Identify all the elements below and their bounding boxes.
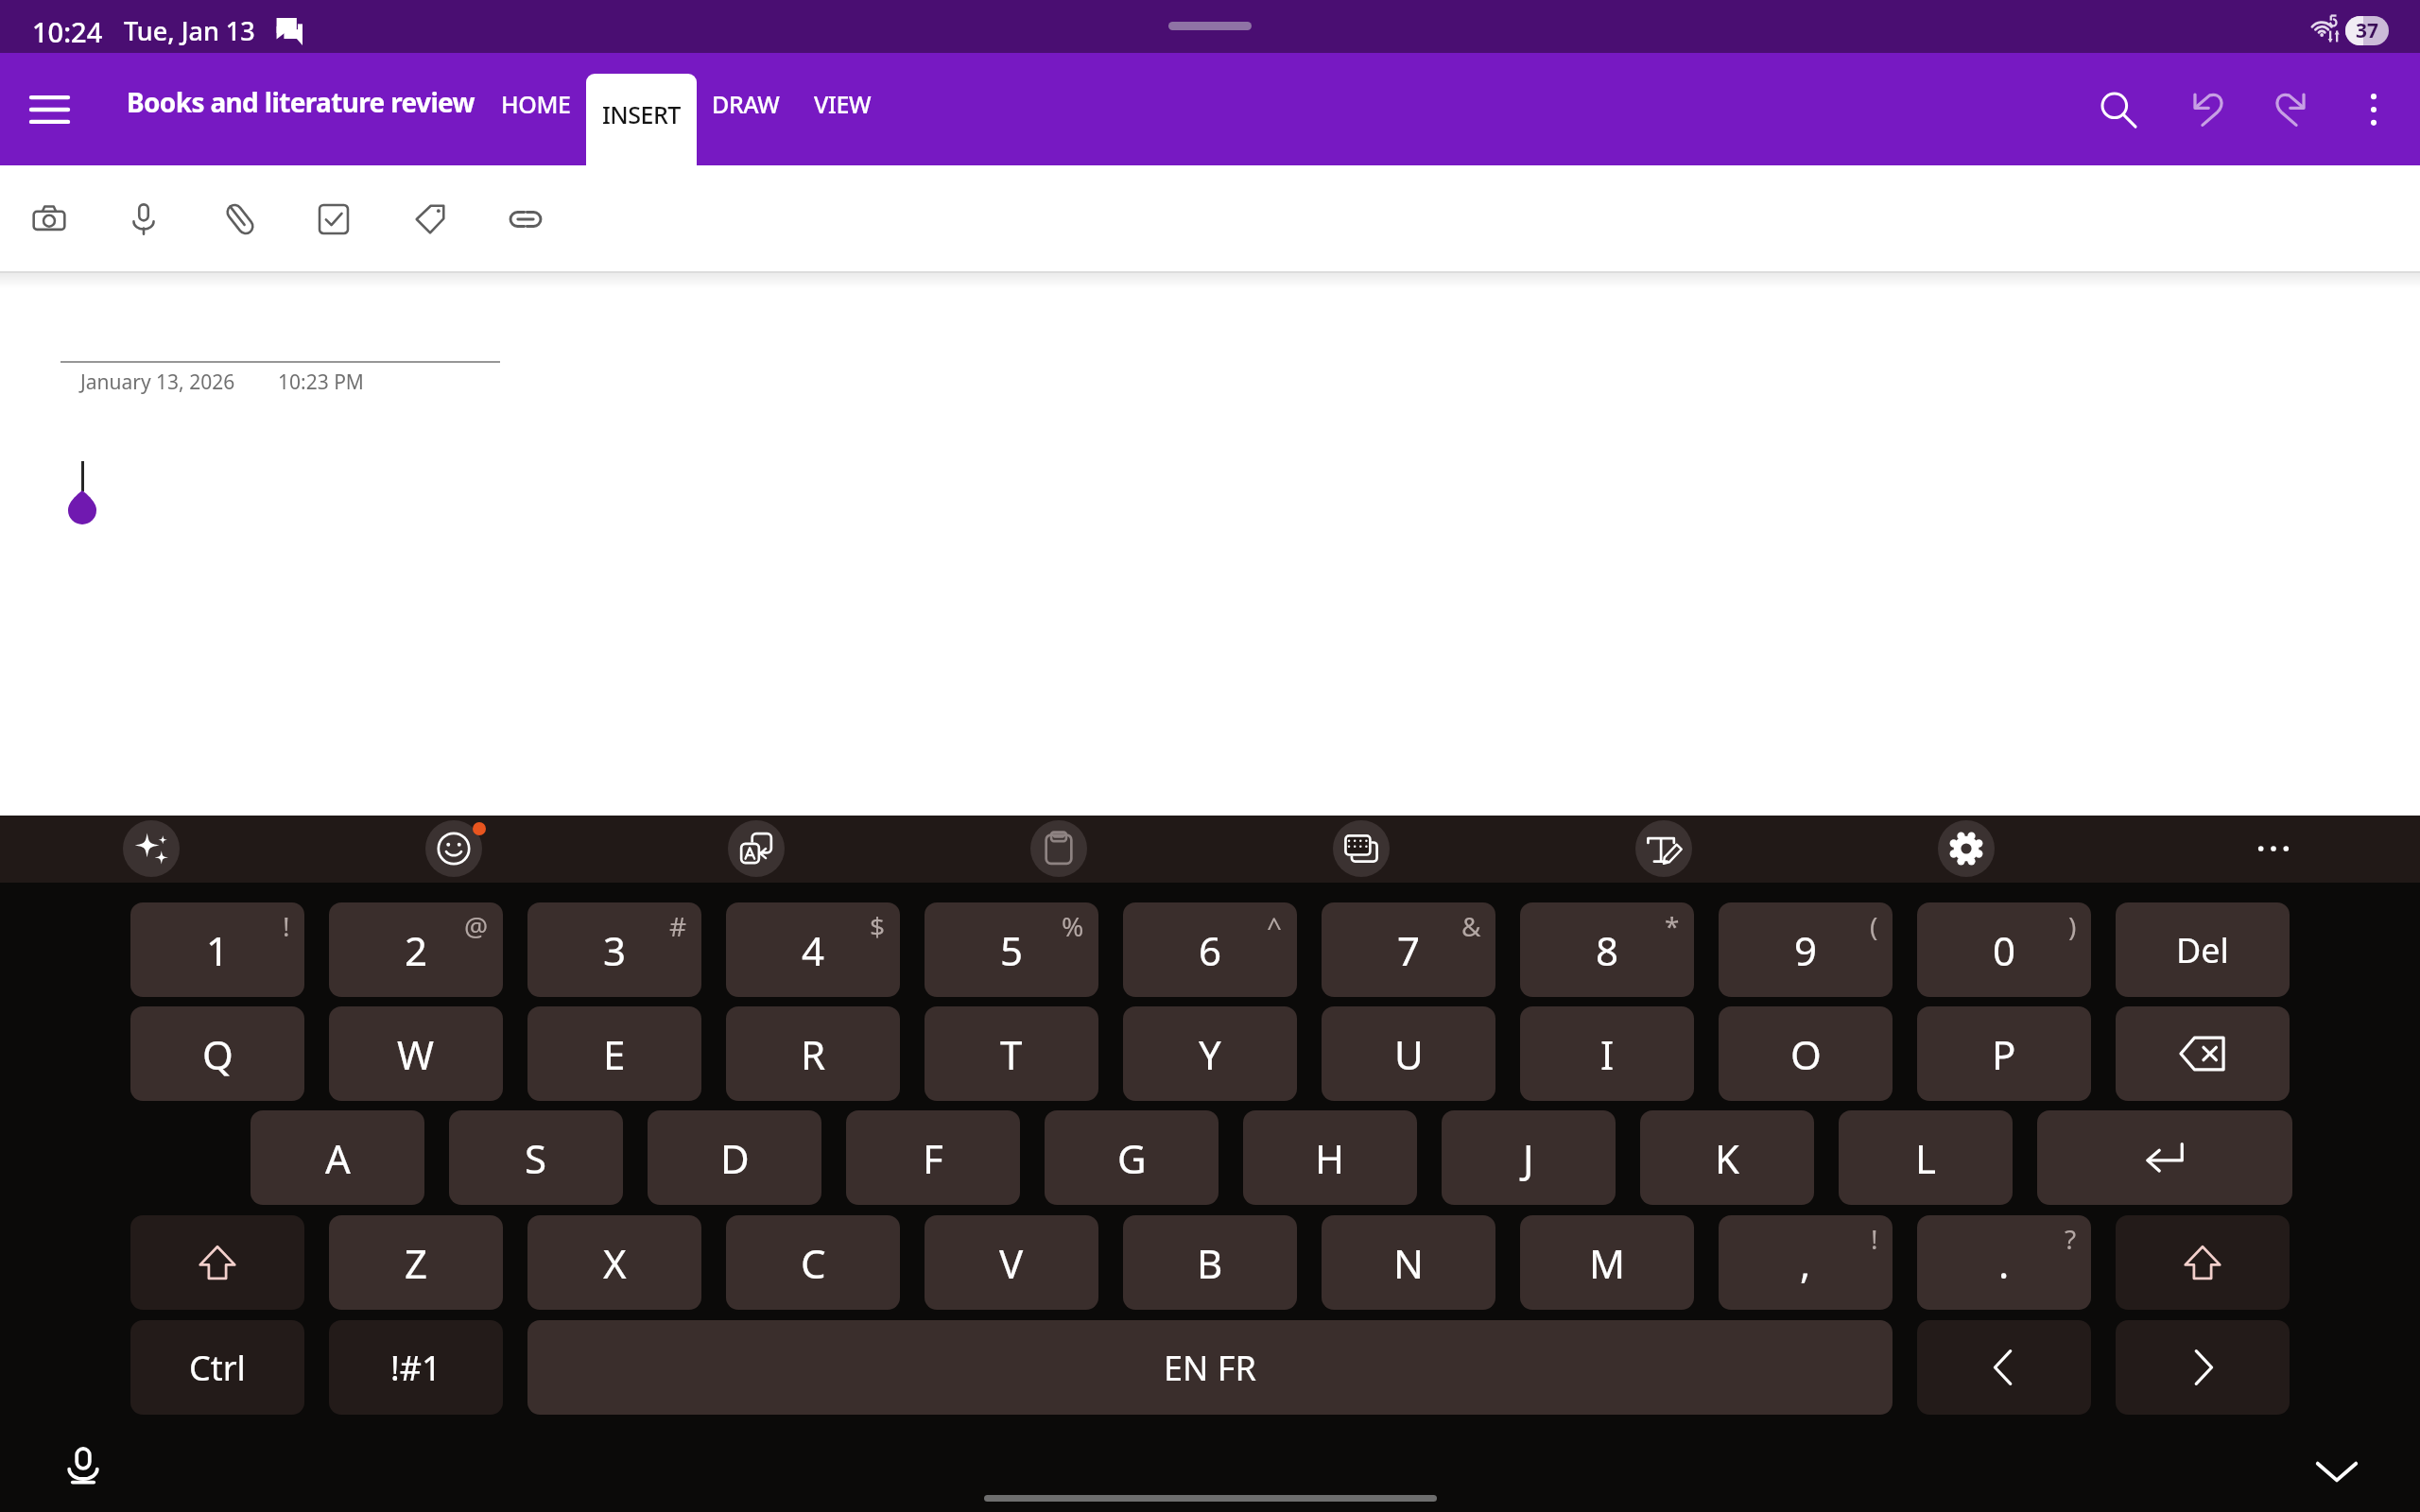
button[interactable]: R [726, 1006, 900, 1101]
button[interactable]: N [1322, 1215, 1495, 1310]
button[interactable]: Link [486, 180, 565, 259]
staticText: D [720, 1131, 750, 1185]
staticText: !#1 [390, 1345, 441, 1391]
staticText: H [1315, 1131, 1345, 1185]
button[interactable]: Z [329, 1215, 503, 1310]
staticText: J [1523, 1131, 1534, 1185]
button[interactable]: !#1 [329, 1320, 503, 1415]
button[interactable]: X [527, 1215, 701, 1310]
button[interactable]: Shift [130, 1215, 304, 1310]
button[interactable]: . [1917, 1215, 2091, 1310]
button[interactable]: T [925, 1006, 1098, 1101]
button[interactable]: Audio recording [104, 180, 183, 259]
staticText: 5 [1000, 923, 1024, 977]
staticText: Del [2176, 927, 2229, 973]
button[interactable]: Enter [2037, 1110, 2292, 1205]
button[interactable]: D [648, 1110, 821, 1205]
button[interactable]: Attach file [200, 180, 280, 259]
button[interactable]: 4 [726, 902, 900, 997]
button[interactable]: Hide keyboard [2303, 1437, 2371, 1505]
staticText: 0 [1993, 923, 2016, 977]
button[interactable]: A [251, 1110, 424, 1205]
button[interactable]: Move cursor left [1917, 1320, 2091, 1415]
button[interactable]: Move cursor right [2116, 1320, 2290, 1415]
button[interactable]: 6 [1123, 902, 1297, 997]
button[interactable]: Search [2078, 69, 2159, 150]
button[interactable]: EN FR [527, 1320, 1893, 1415]
button[interactable]: G [1045, 1110, 1219, 1205]
button[interactable]: 5 [925, 902, 1098, 997]
staticText: & [1461, 908, 1481, 944]
staticText: % [1062, 908, 1084, 944]
button[interactable]: 0 [1917, 902, 2091, 997]
button[interactable]: Navigation menu [12, 71, 86, 148]
button[interactable]: S [449, 1110, 623, 1205]
staticText: T [1000, 1027, 1023, 1081]
button[interactable]: Translate [728, 820, 785, 877]
button[interactable]: Undo [2167, 69, 2248, 150]
staticText: 3 [603, 923, 627, 977]
button[interactable]: 7 [1322, 902, 1495, 997]
button[interactable]: AI suggestions [123, 820, 180, 877]
button[interactable]: 1 [130, 902, 304, 997]
button[interactable]: , [1719, 1215, 1893, 1310]
staticText: B [1197, 1236, 1223, 1290]
button[interactable]: H [1243, 1110, 1417, 1205]
button[interactable]: 9 [1719, 902, 1893, 997]
button[interactable]: HOME [485, 53, 586, 165]
button[interactable]: Backspace [2116, 1006, 2290, 1101]
button[interactable]: L [1839, 1110, 2013, 1205]
button[interactable]: 3 [527, 902, 701, 997]
button[interactable]: VIEW [795, 53, 890, 165]
button[interactable]: Voice typing [49, 1432, 117, 1500]
staticText: . [1998, 1236, 2010, 1290]
button[interactable]: Ctrl [130, 1320, 304, 1415]
staticText: , [1800, 1236, 1811, 1290]
button[interactable]: J [1442, 1110, 1616, 1205]
button[interactable]: More options [2333, 69, 2414, 150]
button[interactable]: K [1640, 1110, 1814, 1205]
button[interactable]: C [726, 1215, 900, 1310]
button[interactable]: B [1123, 1215, 1297, 1310]
button[interactable]: Tag [390, 180, 470, 259]
button[interactable]: V [925, 1215, 1098, 1310]
button[interactable]: Y [1123, 1006, 1297, 1101]
staticText: DRAW [712, 88, 780, 120]
button[interactable]: I [1520, 1006, 1694, 1101]
staticText: N [1393, 1236, 1424, 1290]
staticText: O [1790, 1027, 1822, 1081]
button[interactable]: E [527, 1006, 701, 1101]
button[interactable]: Camera [9, 180, 89, 259]
button[interactable]: Emoji [425, 820, 482, 877]
button[interactable]: F [846, 1110, 1020, 1205]
staticText: U [1394, 1027, 1424, 1081]
button[interactable]: INSERT [586, 74, 697, 165]
button[interactable]: Settings [1938, 820, 1995, 877]
button[interactable]: Handwriting [1635, 820, 1692, 877]
button[interactable]: Redo [2251, 69, 2332, 150]
staticText: @ [464, 908, 489, 944]
button[interactable]: Switch keyboard [1333, 820, 1390, 877]
button[interactable]: Del [2116, 902, 2290, 997]
staticText: # [669, 908, 687, 944]
staticText: 2 [405, 923, 428, 977]
button[interactable]: P [1917, 1006, 2091, 1101]
button[interactable]: DRAW [697, 53, 795, 165]
button[interactable]: Q [130, 1006, 304, 1101]
staticText: January 13, 2026 [80, 369, 235, 396]
staticText: * [1665, 908, 1680, 944]
button[interactable]: 8 [1520, 902, 1694, 997]
button[interactable]: Checklist [294, 180, 373, 259]
button[interactable]: W [329, 1006, 503, 1101]
button[interactable]: U [1322, 1006, 1495, 1101]
staticText: 1 [206, 923, 230, 977]
staticText: Q [202, 1027, 233, 1081]
button[interactable]: M [1520, 1215, 1694, 1310]
button[interactable]: Clipboard [1030, 820, 1087, 877]
staticText: 10:24 [32, 13, 103, 50]
staticText: 37 [2356, 17, 2379, 44]
button[interactable]: O [1719, 1006, 1893, 1101]
button[interactable]: 2 [329, 902, 503, 997]
button[interactable]: Shift [2116, 1215, 2290, 1310]
button[interactable]: More keyboard options [2245, 820, 2302, 877]
